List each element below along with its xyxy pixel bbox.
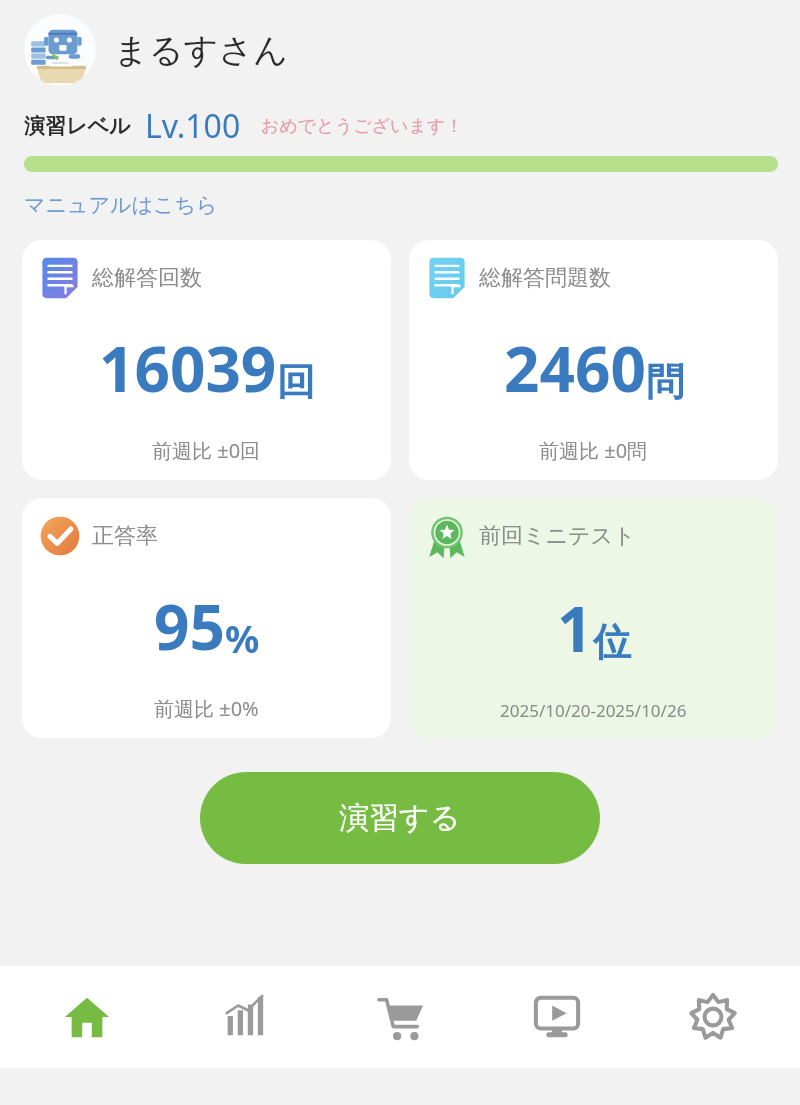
button[interactable]: Settings: [643, 966, 783, 1068]
staticText: 問: [646, 358, 684, 406]
button[interactable]: Videos: [487, 966, 627, 1068]
staticText: 前週比 ±0%: [154, 695, 259, 722]
staticText: 回: [277, 358, 315, 406]
staticText: 2025/10/20-2025/10/26: [500, 699, 687, 722]
staticText: 位: [593, 618, 631, 666]
button[interactable]: Home: [17, 966, 157, 1068]
button[interactable]: 総解答回数: [22, 240, 391, 480]
button[interactable]: マニュアルはこちら: [24, 192, 218, 218]
button[interactable]: Shop: [330, 966, 470, 1068]
staticText: 前回ミニテスト: [479, 522, 636, 550]
staticText: 正答率: [92, 522, 158, 550]
staticText: 演習レベル: [24, 113, 131, 139]
staticText: 2460: [504, 326, 646, 410]
button[interactable]: 総解答問題数: [409, 240, 778, 480]
staticText: 前週比 ±0回: [152, 437, 261, 464]
staticText: まるすさん: [114, 29, 288, 72]
staticText: マニュアルはこちら: [24, 192, 218, 218]
staticText: 1: [557, 586, 593, 670]
staticText: 総解答問題数: [479, 264, 611, 292]
staticText: 前週比 ±0問: [539, 437, 648, 464]
button[interactable]: 正答率: [22, 498, 391, 738]
button[interactable]: 演習する: [200, 772, 600, 864]
staticText: 16039: [99, 326, 277, 410]
staticText: 95: [154, 584, 225, 668]
button[interactable]: 前回ミニテスト: [409, 498, 778, 738]
button[interactable]: Statistics: [173, 966, 313, 1068]
staticText: 総解答回数: [92, 264, 202, 292]
staticText: %: [225, 612, 260, 664]
staticText: おめでとうございます！: [261, 115, 464, 138]
staticText: 演習する: [339, 799, 461, 837]
staticText: Lv.100: [145, 104, 241, 148]
